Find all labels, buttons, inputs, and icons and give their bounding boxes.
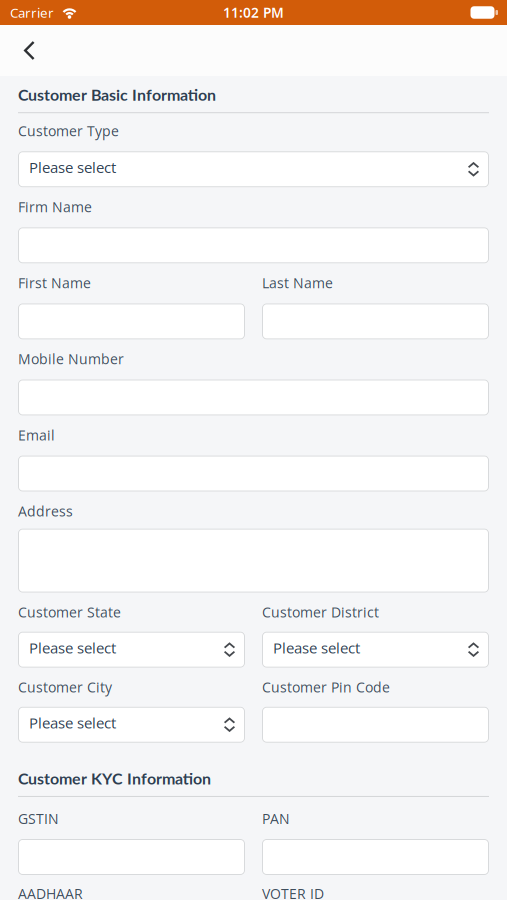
button[interactable]: Back <box>0 25 50 76</box>
staticText: Mobile Number <box>18 349 124 368</box>
staticText: Please select <box>29 637 116 658</box>
staticText: 11:02 PM <box>223 3 284 22</box>
staticText: Customer Type <box>18 121 119 140</box>
staticText: Address <box>18 501 73 521</box>
button[interactable]: Customer District <box>262 632 489 668</box>
staticText: Last Name <box>262 273 333 292</box>
staticText: First Name <box>18 273 91 292</box>
button[interactable]: Customer Type <box>18 151 489 187</box>
staticText: AADHAAR <box>18 884 83 900</box>
button[interactable]: Customer City <box>18 707 245 743</box>
staticText: PAN <box>262 809 290 828</box>
staticText: GSTIN <box>18 809 59 828</box>
staticText: VOTER ID <box>262 884 324 900</box>
staticText: Please select <box>29 157 116 177</box>
staticText: Email <box>18 425 55 445</box>
staticText: Firm Name <box>18 197 92 216</box>
button[interactable]: First Name <box>18 303 245 339</box>
button[interactable]: Address <box>18 529 489 593</box>
staticText: Carrier <box>10 3 54 22</box>
staticText: Please select <box>273 637 360 658</box>
button[interactable]: Customer State <box>18 632 245 668</box>
staticText: Please select <box>29 712 116 733</box>
button[interactable]: GSTIN <box>18 839 245 875</box>
staticText: Customer City <box>18 678 112 697</box>
staticText: Customer District <box>262 603 379 622</box>
button[interactable]: Customer Pin Code <box>262 707 489 743</box>
button[interactable]: Firm Name <box>18 227 489 263</box>
button[interactable]: Email <box>18 455 489 491</box>
staticText: Customer Pin Code <box>262 678 390 697</box>
staticText: Customer Basic Information <box>18 85 216 104</box>
button[interactable]: Mobile Number <box>18 379 489 415</box>
button[interactable]: Last Name <box>262 303 489 339</box>
button[interactable]: PAN <box>262 839 489 875</box>
staticText: Customer KYC Information <box>18 769 211 788</box>
staticText: Customer State <box>18 603 121 622</box>
